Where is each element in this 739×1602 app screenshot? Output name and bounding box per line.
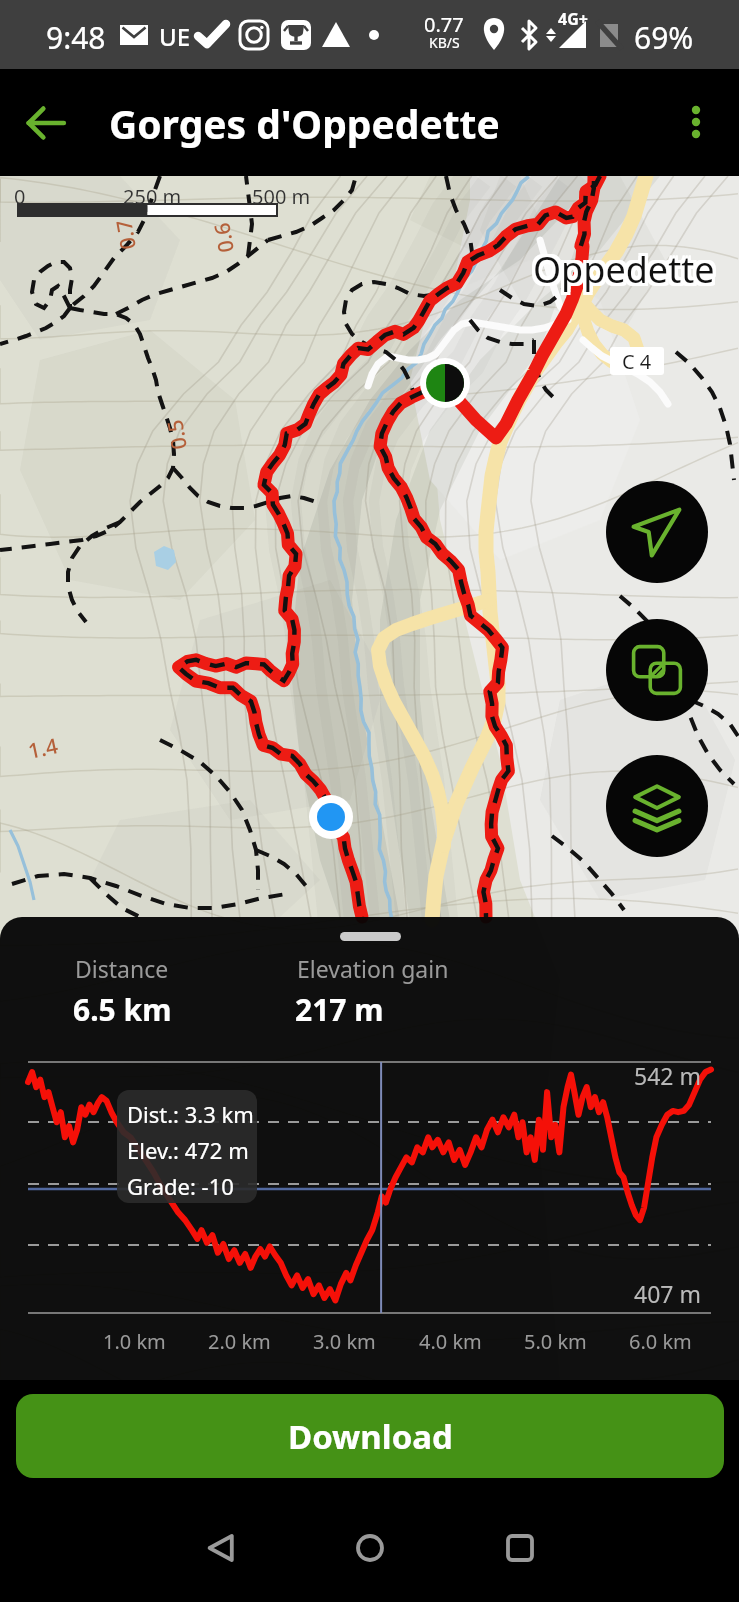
staticText: 6.0 km bbox=[629, 1328, 692, 1355]
button[interactable]: Navigate up bbox=[18, 95, 74, 151]
staticText: 542 m bbox=[634, 1060, 701, 1091]
staticText: Oppedette bbox=[536, 248, 718, 297]
button[interactable]: Download bbox=[16, 1394, 724, 1478]
button[interactable]: Toggle overlay bbox=[606, 619, 708, 721]
staticText: 0.7 bbox=[109, 217, 143, 252]
staticText: 407 m bbox=[634, 1278, 701, 1309]
staticText: 69% bbox=[634, 17, 694, 58]
staticText: 2.0 km bbox=[208, 1328, 271, 1355]
staticText: C 4 bbox=[622, 348, 652, 375]
staticText: Oppedette bbox=[530, 245, 712, 294]
staticText: 4G+ bbox=[558, 8, 588, 30]
button[interactable]: More options bbox=[668, 94, 724, 150]
staticText: 1.4 bbox=[25, 731, 61, 766]
staticText: Oppedette bbox=[533, 242, 715, 291]
staticText: 250 m bbox=[123, 183, 182, 210]
button[interactable]: Home bbox=[330, 1508, 410, 1588]
staticText: Gorges d'Oppedette bbox=[109, 97, 500, 150]
staticText: Grade: -10 bbox=[127, 1171, 234, 1201]
staticText: Oppedette bbox=[536, 245, 718, 294]
button[interactable]: Map layers bbox=[606, 755, 708, 857]
staticText: 9:48 bbox=[46, 17, 106, 58]
staticText: Distance bbox=[75, 953, 169, 984]
button[interactable]: Recent apps bbox=[480, 1508, 560, 1588]
staticText: Elevation gain bbox=[297, 953, 449, 984]
staticText: Oppedette bbox=[533, 245, 715, 294]
staticText: Download bbox=[288, 1414, 453, 1459]
staticText: 3.0 km bbox=[313, 1328, 376, 1355]
staticText: 217 m bbox=[295, 989, 384, 1030]
staticText: 0.5 bbox=[160, 417, 194, 452]
staticText: Elev.: 472 m bbox=[127, 1135, 249, 1165]
staticText: 1.0 km bbox=[103, 1328, 166, 1355]
staticText: Dist.: 3.3 km bbox=[127, 1099, 254, 1129]
staticText: Oppedette bbox=[533, 248, 715, 297]
staticText: Oppedette bbox=[533, 245, 715, 294]
staticText: 4.0 km bbox=[419, 1328, 482, 1355]
staticText: 6.5 km bbox=[73, 989, 172, 1030]
button[interactable]: Back bbox=[181, 1508, 261, 1588]
staticText: 0.77 bbox=[424, 11, 464, 38]
staticText: 5.0 km bbox=[524, 1328, 587, 1355]
staticText: Oppedette bbox=[530, 248, 712, 297]
staticText: Oppedette bbox=[530, 242, 712, 291]
button[interactable]: My location bbox=[606, 481, 708, 583]
staticText: 0 bbox=[14, 183, 26, 210]
staticText: 0.6 bbox=[207, 220, 241, 255]
staticText: 500 m bbox=[252, 183, 311, 210]
staticText: KB/S bbox=[429, 33, 460, 52]
staticText: UE bbox=[159, 20, 191, 53]
staticText: Oppedette bbox=[536, 242, 718, 291]
